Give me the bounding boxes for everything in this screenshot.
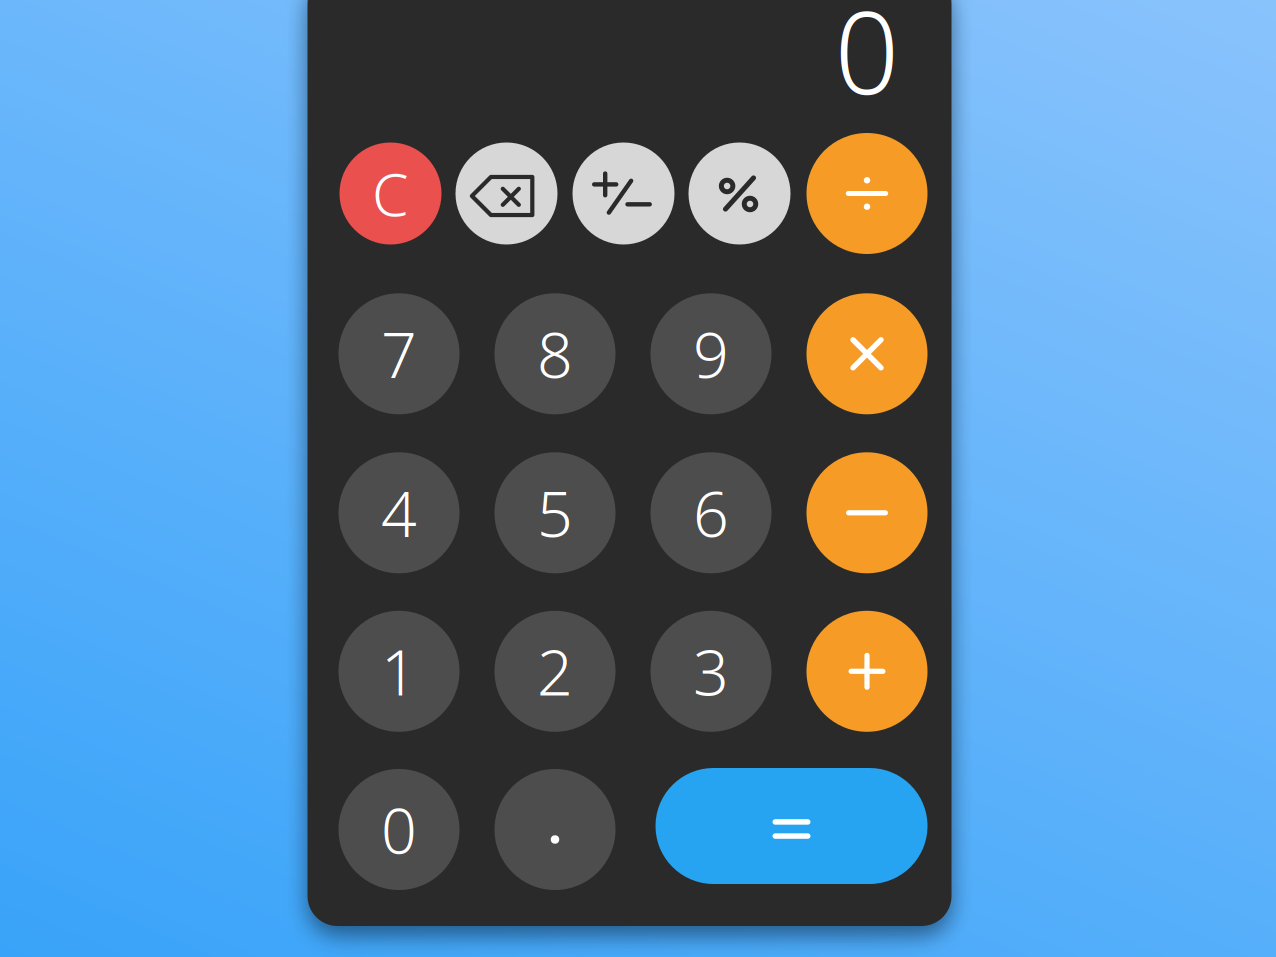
staticText: 1	[381, 630, 417, 713]
staticText: 8	[537, 312, 573, 395]
staticText: 6	[693, 471, 729, 554]
button[interactable]: Decimal point	[494, 769, 615, 890]
button[interactable]: 5	[494, 452, 615, 573]
button[interactable]: 1	[338, 611, 459, 732]
staticText: 7	[381, 312, 417, 395]
button[interactable]: Minus	[806, 452, 927, 573]
staticText: 2	[537, 630, 573, 713]
button[interactable]: 4	[338, 452, 459, 573]
staticText: 5	[537, 471, 573, 554]
staticText: 4	[381, 471, 417, 554]
button[interactable]: Backspace	[455, 142, 557, 244]
staticText: 3	[693, 630, 729, 713]
button[interactable]: Plus	[806, 611, 927, 732]
button[interactable]: 2	[494, 611, 615, 732]
button[interactable]: Toggle sign	[572, 142, 674, 244]
button[interactable]: 8	[494, 293, 615, 414]
button[interactable]: 9	[650, 293, 771, 414]
button[interactable]: Divide	[806, 133, 927, 254]
button[interactable]: 0	[338, 769, 459, 890]
button[interactable]: Multiply	[806, 293, 927, 414]
staticText: 9	[693, 312, 729, 395]
button[interactable]: C	[339, 142, 441, 244]
button[interactable]: 7	[338, 293, 459, 414]
button[interactable]: 6	[650, 452, 771, 573]
button[interactable]: Equals	[650, 769, 927, 890]
button[interactable]: Percent	[688, 142, 790, 244]
staticText: C	[372, 154, 409, 232]
staticText: 0	[381, 788, 417, 871]
button[interactable]: 3	[650, 611, 771, 732]
staticText: 0	[834, 0, 899, 125]
